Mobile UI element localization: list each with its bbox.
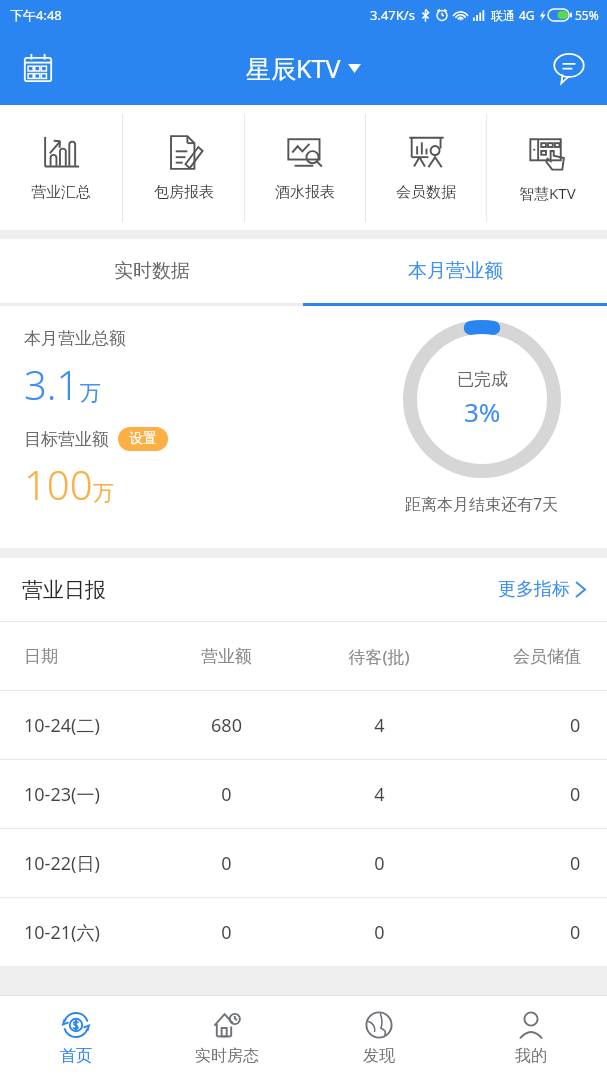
staticText: 营业日报 xyxy=(22,577,106,603)
staticText: 联通 xyxy=(491,8,515,23)
staticText: 包房报表 xyxy=(154,183,214,202)
staticText: 0 xyxy=(570,782,581,807)
button[interactable]: 更多指标 xyxy=(498,578,585,601)
staticText: 下午4:48 xyxy=(10,6,62,24)
button[interactable]: 包房报表 xyxy=(123,105,244,230)
staticText: 已完成 xyxy=(457,369,508,390)
staticText: 4 xyxy=(374,713,385,738)
staticText: 10-21(六) xyxy=(24,920,100,945)
staticText: 我的 xyxy=(515,1046,547,1066)
staticText: 会员数据 xyxy=(396,183,456,202)
staticText: 实时房态 xyxy=(195,1046,259,1066)
staticText: 0 xyxy=(570,851,581,876)
staticText: 4 xyxy=(374,782,385,807)
staticText: 本月营业额 xyxy=(408,259,503,283)
staticText: 目标营业额 xyxy=(24,429,109,450)
staticText: 10-22(日) xyxy=(24,851,100,876)
button[interactable]: 10-21(六) xyxy=(0,898,607,966)
staticText: 0 xyxy=(374,920,385,945)
staticText: 日期 xyxy=(24,646,58,667)
staticText: 10-23(一) xyxy=(24,782,100,807)
staticText: 实时数据 xyxy=(114,259,190,283)
staticText: 待客(批) xyxy=(348,645,410,668)
button[interactable]: 智慧KTV xyxy=(487,105,607,230)
button[interactable]: 星辰KTV xyxy=(246,51,361,85)
button[interactable]: 会员数据 xyxy=(366,105,486,230)
staticText: 酒水报表 xyxy=(275,183,335,202)
staticText: 设置 xyxy=(129,430,157,448)
staticText: 0 xyxy=(221,851,232,876)
button[interactable]: 设置 xyxy=(118,427,168,451)
staticText: 距离本月结束还有7天 xyxy=(405,493,559,515)
staticText: 更多指标 xyxy=(498,578,570,601)
staticText: 0 xyxy=(570,920,581,945)
staticText: 100 xyxy=(24,457,93,511)
staticText: 星辰KTV xyxy=(246,51,341,85)
button[interactable]: 本月营业额 xyxy=(303,239,607,303)
staticText: 本月营业总额 xyxy=(24,328,126,349)
staticText: 智慧KTV xyxy=(519,183,576,203)
staticText: 55% xyxy=(575,7,599,23)
staticText: 0 xyxy=(374,851,385,876)
staticText: 万 xyxy=(93,480,114,506)
staticText: 680 xyxy=(211,713,242,738)
button[interactable]: 营业汇总 xyxy=(0,105,122,230)
staticText: 首页 xyxy=(60,1046,92,1066)
button[interactable]: 实时房态 xyxy=(151,996,303,1080)
button[interactable]: Messages xyxy=(545,44,593,92)
button[interactable]: 10-22(日) xyxy=(0,829,607,897)
button[interactable]: 10-24(二) xyxy=(0,691,607,759)
staticText: 10-24(二) xyxy=(24,713,100,738)
button[interactable]: 我的 xyxy=(455,996,607,1080)
staticText: 发现 xyxy=(363,1046,395,1066)
button[interactable]: 发现 xyxy=(303,996,455,1080)
staticText: 0 xyxy=(570,713,581,738)
staticText: 营业额 xyxy=(201,646,252,667)
staticText: 0 xyxy=(221,920,232,945)
button[interactable]: 日期 xyxy=(0,622,607,690)
staticText: 3.47K/s xyxy=(370,6,415,24)
button[interactable]: 酒水报表 xyxy=(245,105,365,230)
button[interactable]: Calendar xyxy=(14,44,62,92)
staticText: 会员储值 xyxy=(513,646,581,667)
button[interactable]: 10-23(一) xyxy=(0,760,607,828)
staticText: 4G xyxy=(519,7,535,23)
staticText: 3% xyxy=(464,394,501,429)
button[interactable]: 首页 xyxy=(0,996,151,1080)
staticText: 0 xyxy=(221,782,232,807)
staticText: 营业汇总 xyxy=(31,183,91,202)
staticText: 3.1 xyxy=(24,357,80,411)
button[interactable]: 实时数据 xyxy=(0,239,303,303)
staticText: 万 xyxy=(80,380,101,406)
